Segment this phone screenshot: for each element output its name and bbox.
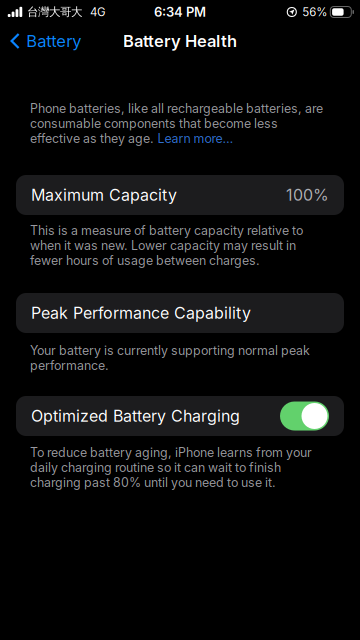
button[interactable]: Peak Performance Capability — [0, 293, 360, 333]
staticText: 56% — [302, 5, 327, 19]
staticText: consumable components that become less — [30, 116, 278, 131]
button[interactable]: Optimized Battery Charging — [280, 401, 329, 430]
staticText: To reduce battery aging, iPhone learns f… — [30, 445, 312, 460]
staticText: Maximum Capacity — [31, 185, 177, 205]
staticText: 4G — [90, 5, 106, 19]
staticText: performance. — [30, 358, 109, 373]
staticText: Your battery is currently supporting nor… — [30, 343, 310, 358]
staticText: Battery Health — [123, 31, 237, 51]
staticText: charging past 80% until you need to use … — [30, 475, 276, 490]
staticText: Learn more… — [157, 131, 233, 146]
staticText: This is a measure of battery capacity re… — [30, 223, 303, 238]
staticText: Optimized Battery Charging — [31, 406, 240, 426]
staticText: 6:34 PM — [154, 4, 206, 20]
button[interactable]: Learn more… — [157, 131, 233, 146]
staticText: effective as they age. — [30, 131, 154, 146]
button[interactable]: Battery — [0, 24, 90, 58]
staticText: when it was new. Lower capacity may resu… — [30, 238, 296, 253]
staticText: daily charging routine so it can wait to… — [30, 460, 281, 475]
button[interactable]: Maximum Capacity — [0, 175, 360, 215]
staticText: Phone batteries, like all rechargeable b… — [30, 101, 323, 116]
staticText: fewer hours of usage between charges. — [30, 253, 260, 268]
button[interactable]: Optimized Battery Charging — [0, 396, 360, 436]
staticText: 台灣大哥大 — [27, 5, 82, 19]
staticText: Battery — [26, 31, 81, 51]
staticText: Peak Performance Capability — [31, 303, 251, 323]
staticText: 100% — [286, 185, 329, 205]
